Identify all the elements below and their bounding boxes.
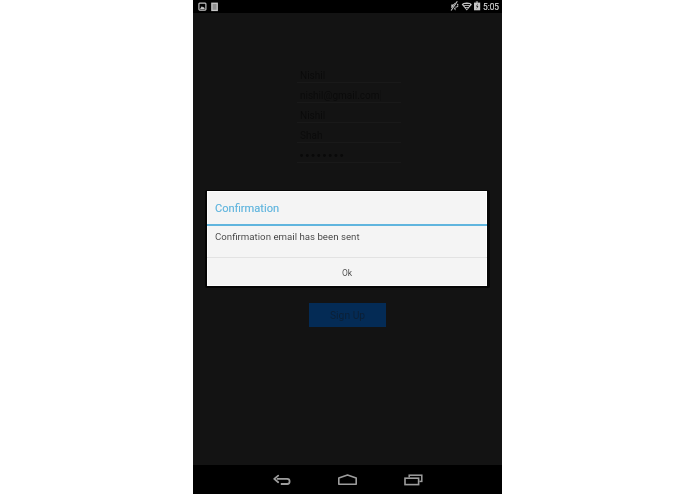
button[interactable]: Back	[261, 465, 303, 494]
button[interactable]: Home	[326, 465, 368, 494]
staticText: Confirmation	[215, 202, 280, 215]
staticText: Sign Up	[330, 309, 366, 321]
button[interactable]: Ok	[207, 259, 487, 286]
staticText: Confirmation email has been sent	[215, 231, 360, 242]
button[interactable]: Recent apps	[393, 465, 435, 494]
staticText: 5:05	[483, 2, 499, 12]
staticText: Ok	[342, 268, 353, 278]
button[interactable]: Sign Up	[309, 303, 386, 327]
